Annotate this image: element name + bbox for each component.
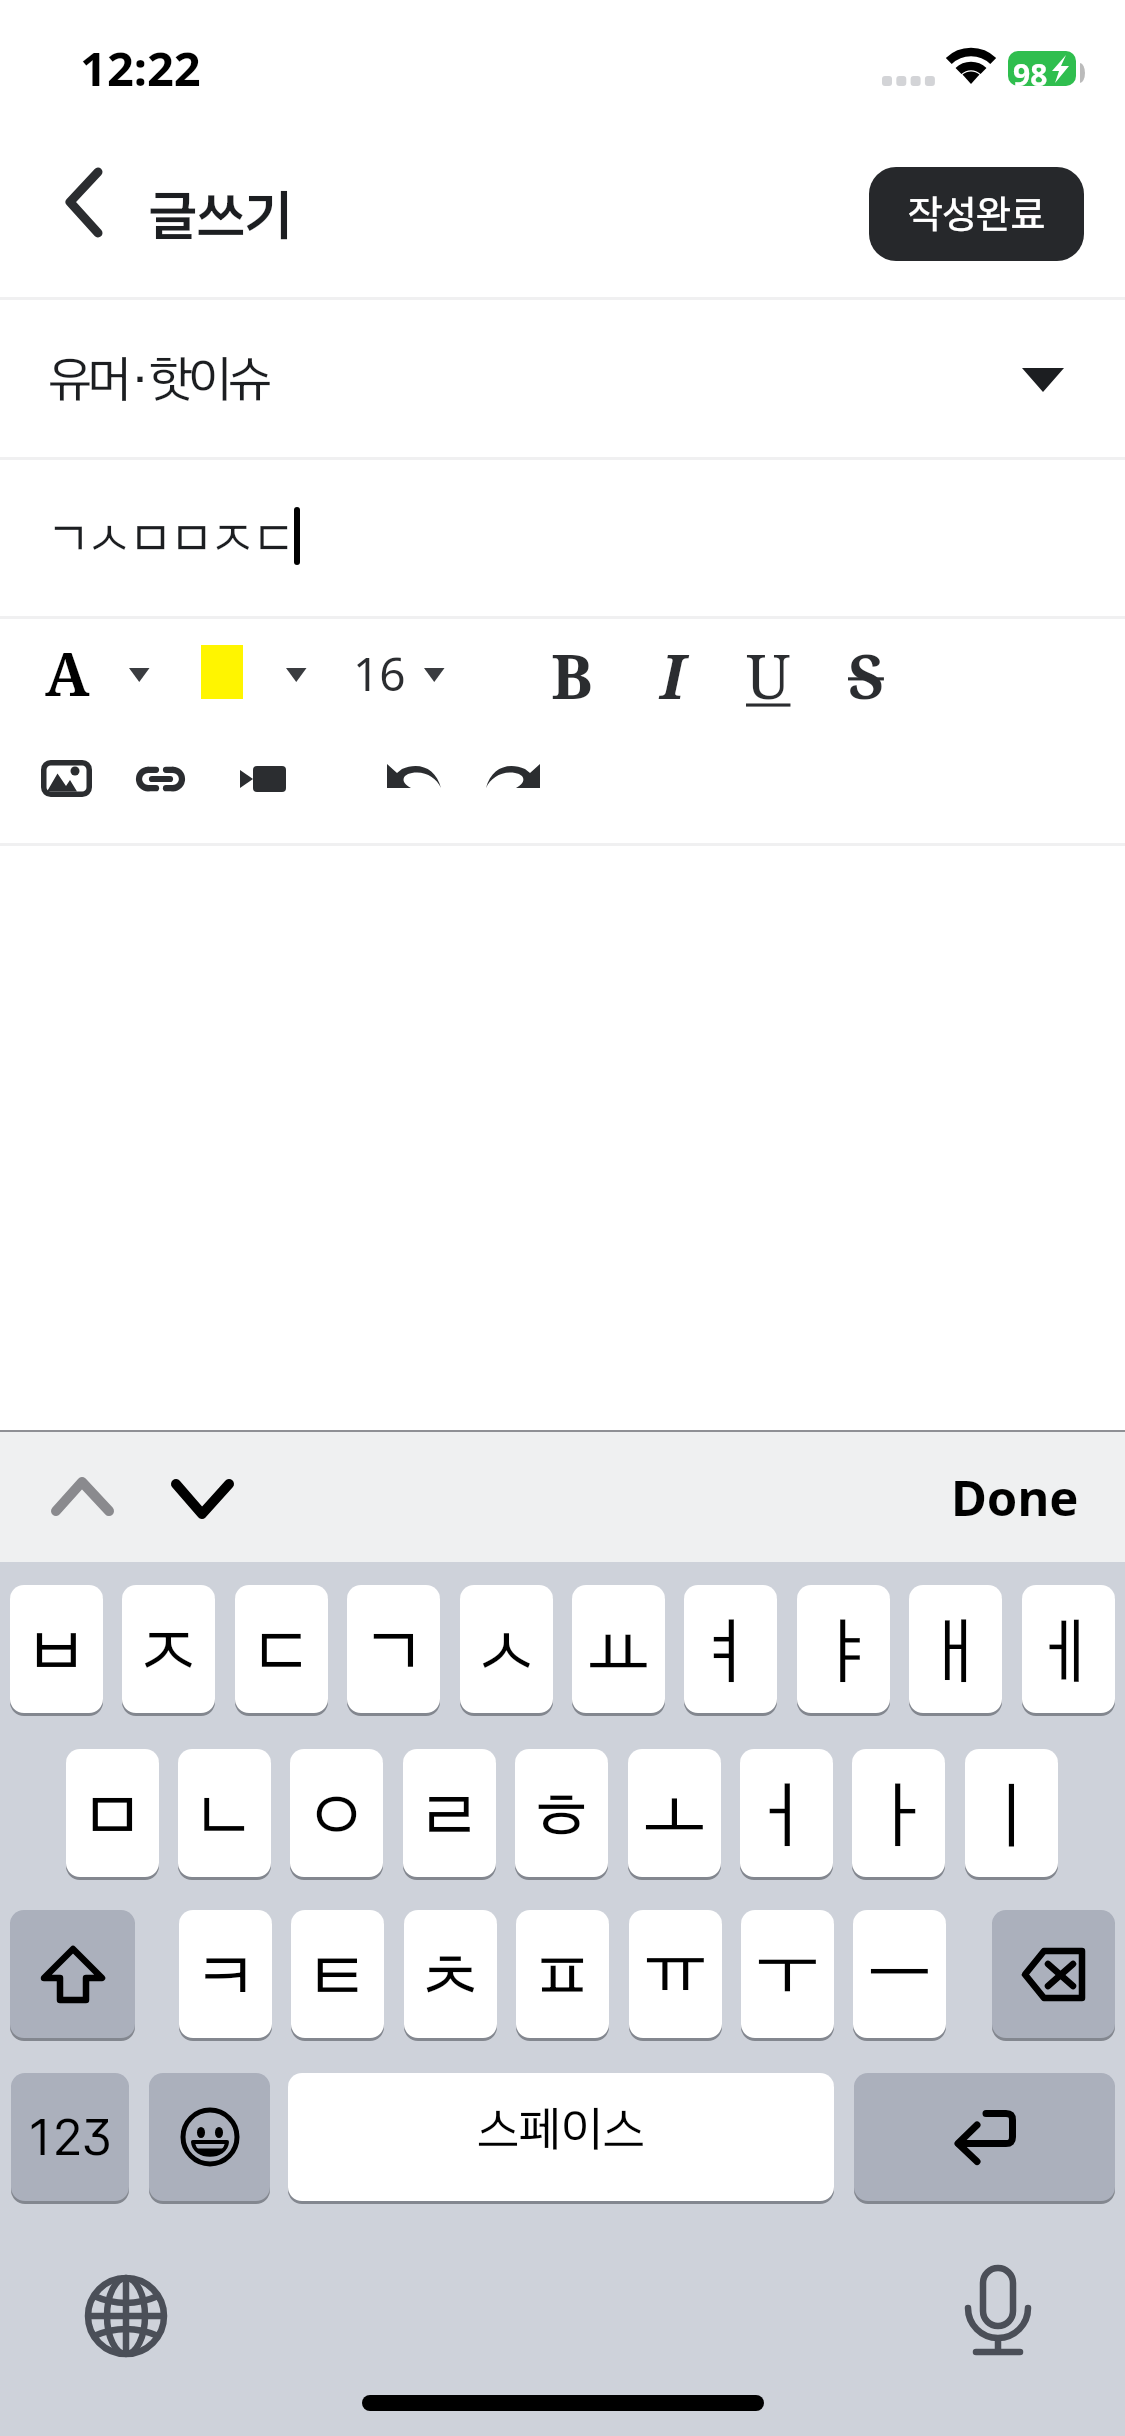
staticText: ㄷ xyxy=(252,1606,311,1687)
staticText: ㅌ xyxy=(308,1931,367,2012)
button[interactable]: ㅂ xyxy=(10,1585,103,1716)
staticText: Done xyxy=(951,1464,1079,1531)
staticText: ㄱ xyxy=(364,1606,423,1687)
staticText: ㄱㅅㅁㅁㅈㄷ xyxy=(48,507,295,563)
button[interactable]: ㅇ xyxy=(290,1749,383,1880)
button[interactable]: B xyxy=(531,623,621,723)
button[interactable]: ㅔ xyxy=(1022,1585,1115,1716)
button[interactable]: Return xyxy=(854,2073,1115,2204)
button[interactable]: Redo xyxy=(487,763,543,789)
staticText: I xyxy=(660,633,685,717)
staticText: 98 xyxy=(1013,54,1048,95)
button[interactable]: Open menu xyxy=(408,644,474,716)
staticText: ㄴ xyxy=(195,1770,254,1851)
button[interactable]: ㅛ xyxy=(572,1585,665,1716)
staticText: ㅡ xyxy=(870,1913,929,1994)
button[interactable]: ㄹ xyxy=(403,1749,496,1880)
button[interactable]: Done xyxy=(935,1450,1095,1544)
button[interactable]: ㅑ xyxy=(797,1585,890,1716)
staticText: 글쓰기 xyxy=(149,182,293,249)
button[interactable]: Numbers xyxy=(11,2073,129,2204)
staticText: ㅛ xyxy=(589,1606,648,1687)
button[interactable]: ㅕ xyxy=(684,1585,777,1716)
button[interactable]: ㅁ xyxy=(66,1749,159,1880)
button[interactable]: ㄱ xyxy=(347,1585,440,1716)
button[interactable]: Insert video xyxy=(240,766,286,792)
staticText: U xyxy=(746,633,791,717)
button[interactable]: ㅐ xyxy=(909,1585,1002,1716)
button[interactable]: ㅅ xyxy=(460,1585,553,1716)
staticText: ㅜ xyxy=(758,1917,817,1998)
button[interactable]: Open menu xyxy=(270,644,336,716)
staticText: ㅎ xyxy=(532,1770,591,1851)
staticText: ㅇ xyxy=(307,1770,366,1851)
staticText: ㅍ xyxy=(533,1931,592,2012)
staticText: ㅏ xyxy=(869,1770,928,1851)
staticText: ㄹ xyxy=(420,1770,479,1851)
button[interactable]: Undo xyxy=(386,763,442,789)
button[interactable]: I xyxy=(640,623,730,723)
button[interactable]: ㅎ xyxy=(515,1749,608,1880)
button[interactable]: Dictate xyxy=(950,2262,1046,2362)
button[interactable]: ㅗ xyxy=(628,1749,721,1880)
staticText: ㅂ xyxy=(27,1606,86,1687)
button[interactable]: ㅊ xyxy=(404,1910,497,2041)
button[interactable]: Switch keyboard xyxy=(78,2268,174,2364)
button[interactable]: ㅜ xyxy=(741,1910,834,2041)
button[interactable]: Open menu xyxy=(113,644,179,716)
button[interactable]: ㄴ xyxy=(178,1749,271,1880)
staticText: ㅋ xyxy=(196,1931,255,2012)
staticText: 12:22 xyxy=(80,36,201,100)
button[interactable]: 작성완료 xyxy=(869,167,1084,261)
staticText: 스페이스 xyxy=(477,2099,645,2157)
button[interactable]: ㅓ xyxy=(740,1749,833,1880)
button[interactable]: Previous field xyxy=(40,1463,125,1548)
button[interactable]: Next field xyxy=(160,1463,245,1548)
staticText: ㅊ xyxy=(421,1931,480,2012)
staticText: B xyxy=(551,633,593,717)
button[interactable]: ㅣ xyxy=(965,1749,1058,1880)
button[interactable]: 스페이스 xyxy=(288,2073,834,2204)
staticText: ㅣ xyxy=(982,1770,1041,1851)
staticText: 123 xyxy=(29,2107,112,2167)
button[interactable]: Emoji xyxy=(149,2073,270,2204)
staticText: S xyxy=(848,633,884,717)
button[interactable]: ㅈ xyxy=(122,1585,215,1716)
staticText: ㅠ xyxy=(646,1916,705,1997)
button[interactable]: ㅌ xyxy=(291,1910,384,2041)
button[interactable]: Backspace xyxy=(992,1910,1115,2041)
button[interactable]: ㅋ xyxy=(179,1910,272,2041)
staticText: 작성완료 xyxy=(908,190,1045,238)
button[interactable]: Shift xyxy=(10,1910,135,2041)
button[interactable]: S xyxy=(828,623,918,723)
staticText: ㅅ xyxy=(477,1606,536,1687)
button[interactable]: ㄷ xyxy=(235,1585,328,1716)
staticText: ㅑ xyxy=(814,1606,873,1687)
button[interactable]: Insert image xyxy=(41,760,92,797)
staticText: ㅐ xyxy=(926,1606,985,1687)
button[interactable]: U xyxy=(726,623,816,723)
staticText: ㅗ xyxy=(645,1770,704,1851)
button[interactable]: ㅏ xyxy=(852,1749,945,1880)
staticText: ㅓ xyxy=(757,1770,816,1851)
staticText: A xyxy=(45,633,90,713)
staticText: ㅈ xyxy=(139,1606,198,1687)
button[interactable]: Back xyxy=(36,145,136,245)
button[interactable]: Insert link xyxy=(136,755,206,805)
staticText: ㅕ xyxy=(701,1606,760,1687)
button[interactable]: ㅠ xyxy=(629,1910,722,2041)
button[interactable]: 유머·핫이슈 xyxy=(0,300,1125,457)
staticText: ㅔ xyxy=(1039,1606,1098,1687)
staticText: 16 xyxy=(353,642,406,705)
button[interactable]: ㅍ xyxy=(516,1910,609,2041)
staticText: ㅁ xyxy=(83,1770,142,1851)
staticText: 유머·핫이슈 xyxy=(48,348,268,409)
button[interactable]: ㅡ xyxy=(853,1910,946,2041)
